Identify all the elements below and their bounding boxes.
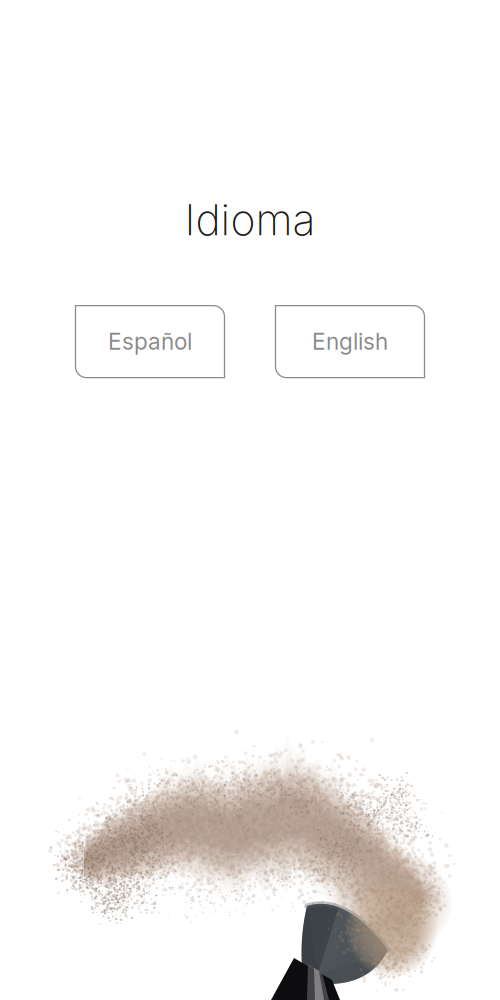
staticText: Idioma <box>184 194 315 246</box>
staticText: English <box>312 328 388 355</box>
staticText: Español <box>108 328 192 355</box>
button[interactable]: English <box>275 306 424 378</box>
button[interactable]: Español <box>75 306 224 378</box>
